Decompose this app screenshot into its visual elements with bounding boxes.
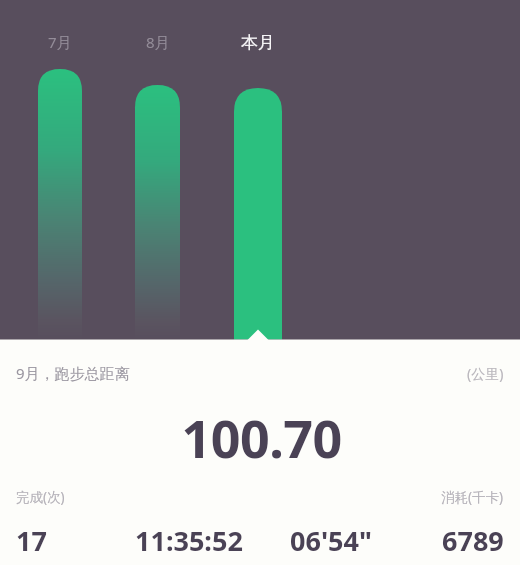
button[interactable]: 7月	[38, 26, 84, 56]
button[interactable]: 8月 跑步距离	[135, 85, 180, 339]
button[interactable]: 8月	[135, 26, 181, 56]
button[interactable]: 本月	[230, 26, 286, 56]
button[interactable]: 本月 跑步距离	[234, 88, 282, 339]
button[interactable]: 9月 跑步总距离 100.70 公里	[0, 340, 520, 565]
button[interactable]: 7月 跑步距离	[38, 69, 82, 339]
